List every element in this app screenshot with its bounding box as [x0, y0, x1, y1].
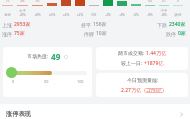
staticText: +1879亿 [144, 60, 164, 67]
staticText: 跌停 [171, 13, 185, 17]
staticText: 50 [44, 79, 49, 84]
staticText: 较上一日: [121, 60, 144, 67]
staticText: -2% [101, 12, 115, 17]
staticText: 1.44万亿 [146, 50, 166, 57]
staticText: 涨停表现 [6, 110, 31, 118]
staticText: 156家 [93, 21, 107, 28]
staticText: 小于 -8% [157, 9, 171, 17]
staticText: 2.27万亿 [121, 87, 141, 94]
staticText: 停牌 [84, 31, 94, 37]
staticText: 96 [30, 0, 45, 3]
staticText: +2793亿 [146, 88, 162, 93]
staticText: 88 [15, 0, 30, 3]
staticText: +2% [73, 12, 87, 17]
staticText: 49 [51, 51, 61, 62]
staticText: -4% [115, 12, 129, 17]
staticText: 涨停 [0, 13, 15, 17]
staticText: 2953家 [14, 21, 31, 28]
staticText: 75家 [14, 30, 25, 37]
staticText: 今日预测量能: [127, 77, 159, 84]
staticText: 大于 +8% [15, 9, 30, 17]
staticText: 下跌 [157, 22, 167, 28]
staticText: +6% [45, 12, 59, 17]
staticText: 2340家 [169, 21, 186, 28]
staticText: 市场热度: [27, 53, 49, 60]
staticText: 0% [87, 12, 101, 17]
staticText: 0 [171, 0, 185, 3]
staticText: 75 [0, 0, 15, 3]
button[interactable]: 两市成交额: [96, 47, 188, 70]
staticText: 跌停 [166, 31, 176, 37]
staticText: 两市成交额: [118, 50, 146, 57]
staticText: 0 [12, 79, 15, 84]
staticText: 100 [77, 79, 84, 84]
staticText: 涨停 [2, 31, 12, 37]
staticText: 0家 [178, 30, 186, 37]
staticText: -8% [143, 12, 157, 17]
staticText: 持平 [81, 22, 91, 28]
staticText: 上涨 [2, 22, 12, 28]
staticText: 64 [143, 0, 157, 3]
staticText: 10家 [96, 30, 107, 37]
button[interactable]: 市场热度: [3, 47, 92, 97]
staticText: -6% [129, 12, 143, 17]
button[interactable]: 涨停表现 [0, 104, 190, 119]
staticText: +4% [59, 12, 73, 17]
button[interactable]: 今日预测量能: [96, 73, 188, 97]
staticText: +8% [30, 12, 45, 17]
staticText: 41 [157, 0, 171, 3]
